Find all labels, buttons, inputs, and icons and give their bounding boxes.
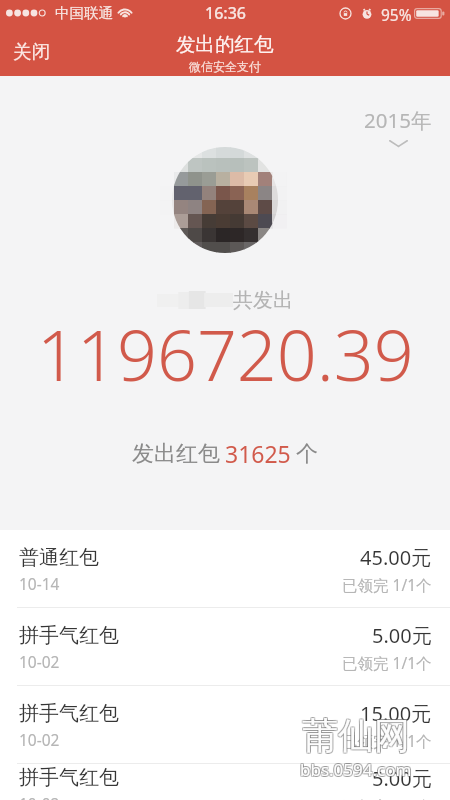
staticText: 已领完 1/1个 — [342, 795, 432, 800]
staticText: 95% — [381, 4, 412, 25]
staticText: 莆仙网 — [303, 714, 411, 759]
staticText: 发出的红包 — [176, 32, 274, 57]
other: Alarm — [361, 7, 373, 20]
staticText: 莆仙网 — [303, 712, 411, 757]
staticText: bbs.0594.com — [299, 758, 411, 781]
staticText: 31625 — [225, 438, 291, 469]
staticText: bbs.0594.com — [299, 759, 411, 782]
staticText: 莆仙网 — [302, 712, 410, 757]
staticText: 发出红包 — [132, 440, 220, 468]
staticText: 莆仙网 — [301, 714, 409, 759]
staticText: 15.00元 — [360, 700, 432, 727]
staticText: 10-02 — [19, 793, 60, 800]
staticText: 45.00元 — [360, 544, 432, 571]
staticText: 微信安全支付 — [189, 59, 261, 74]
button[interactable]: 普通红包 — [0, 530, 450, 608]
staticText: 1196720.39 — [37, 306, 414, 401]
button[interactable]: 拼手气红包 — [0, 764, 450, 800]
staticText: 已领完 1/1个 — [342, 652, 432, 673]
staticText: 莆仙网 — [301, 713, 409, 758]
staticText: 已领完 1/1个 — [342, 574, 432, 595]
staticText: 5.00元 — [372, 622, 432, 649]
button[interactable]: 拼手气红包 — [0, 686, 450, 764]
staticText: bbs.0594.com — [300, 759, 412, 782]
staticText: 16:36 — [205, 2, 246, 24]
staticText: 5.00元 — [372, 765, 432, 792]
staticText: 拼手气红包 — [19, 623, 119, 648]
staticText: 10-02 — [19, 729, 60, 750]
staticText: bbs.0594.com — [301, 759, 413, 782]
staticText: 拼手气红包 — [19, 701, 119, 726]
staticText: bbs.0594.com — [301, 758, 413, 781]
staticText: 共发出 — [233, 288, 293, 313]
staticText: 个 — [296, 440, 318, 468]
other: Rotation lock — [339, 7, 352, 20]
staticText: 普通红包 — [19, 545, 99, 570]
button[interactable]: 拼手气红包 — [0, 608, 450, 686]
staticText: 莆仙网 — [303, 713, 411, 758]
staticText: 关闭 — [13, 40, 50, 63]
staticText: bbs.0594.com — [301, 757, 413, 780]
staticText: bbs.0594.com — [300, 758, 412, 781]
staticText: 拼手气红包 — [19, 765, 119, 790]
staticText: 莆仙网 — [302, 714, 410, 759]
staticText: 中国联通 — [55, 4, 113, 22]
staticText: 10-14 — [19, 573, 60, 594]
button[interactable]: 关闭 — [0, 30, 63, 73]
staticText: bbs.0594.com — [300, 757, 412, 780]
staticText: 莆仙网 — [301, 712, 409, 757]
button[interactable]: 2015年 — [360, 103, 436, 151]
staticText: 已领完 1/1个 — [342, 730, 432, 751]
staticText: 莆仙网 — [302, 713, 410, 758]
staticText: 10-02 — [19, 651, 60, 672]
staticText: 2015年 — [364, 106, 432, 134]
staticText: bbs.0594.com — [299, 757, 411, 780]
